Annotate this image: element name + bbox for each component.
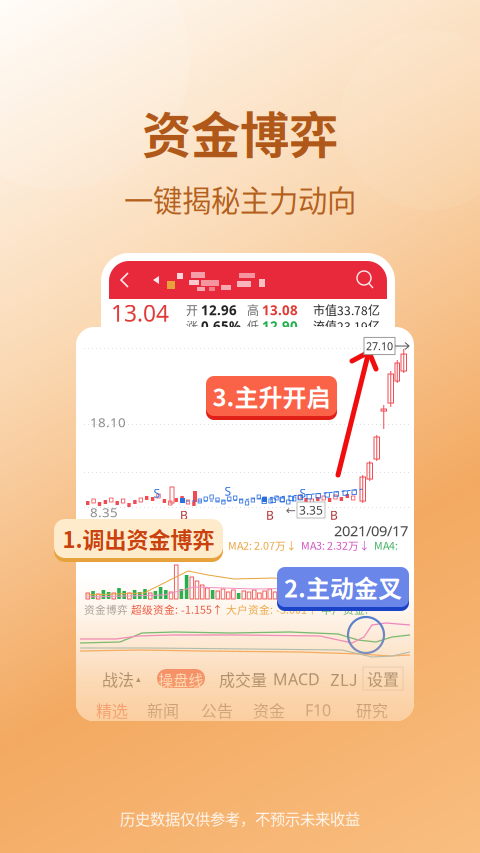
staticText: ZLJ xyxy=(330,667,358,691)
button[interactable]: ZLJ xyxy=(330,665,358,693)
staticText: MA4: xyxy=(374,537,398,553)
staticText: ← xyxy=(286,503,296,517)
button[interactable]: F10 xyxy=(296,697,340,723)
staticText: 设置 xyxy=(367,667,399,690)
staticText: 8.35 xyxy=(90,503,118,521)
staticText: 战法 xyxy=(102,667,134,691)
staticText: 27.10 xyxy=(366,339,393,353)
staticText: 2.主动金叉 xyxy=(284,570,402,604)
staticText: 涨 xyxy=(186,317,198,335)
button[interactable]: 1.调出资金博弈 xyxy=(54,519,223,558)
staticText: -5.001↑ xyxy=(276,601,318,617)
staticText: S xyxy=(299,485,306,501)
staticText: 12.96 xyxy=(201,301,237,319)
staticText: B xyxy=(180,507,188,523)
staticText: 一键揭秘主力动向 xyxy=(124,177,356,220)
staticText: S xyxy=(153,485,160,501)
button[interactable]: 设置 xyxy=(363,667,403,690)
staticText: B xyxy=(266,507,274,523)
staticText: 低 xyxy=(247,317,259,335)
staticText: 12.90 xyxy=(262,317,298,335)
staticText: 高 xyxy=(247,301,259,319)
staticText: 资金博弈 xyxy=(84,601,128,617)
button[interactable]: 研究 xyxy=(350,697,394,723)
staticText: 13.04 xyxy=(111,298,169,328)
staticText: MA3: 2.32万↓ xyxy=(301,537,370,553)
staticText: 资金 xyxy=(253,698,285,722)
staticText: 操盘线 xyxy=(158,669,203,690)
staticText: -1.155↑ xyxy=(181,601,223,617)
staticText: 13.08 xyxy=(262,301,298,319)
staticText: 开 xyxy=(186,301,198,319)
button[interactable]: MACD xyxy=(273,665,311,693)
button[interactable]: 2.主动金叉 xyxy=(277,567,409,607)
staticText: 7万↓ xyxy=(196,537,224,553)
staticText: B xyxy=(330,507,338,523)
staticText: 市值33.78亿 xyxy=(313,301,380,319)
staticText: ▴ xyxy=(136,674,141,684)
staticText: 1.调出资金博弈 xyxy=(62,523,214,554)
button[interactable]: 资金 xyxy=(247,697,291,723)
staticText: 18.10 xyxy=(90,413,126,431)
button[interactable]: 精选 xyxy=(90,697,134,723)
staticText: 成交量 xyxy=(219,667,267,691)
staticText: 公告 xyxy=(201,698,233,722)
staticText: MACD xyxy=(273,668,320,690)
staticText: 2021/09/17 xyxy=(334,521,408,540)
staticText: S xyxy=(224,483,231,499)
staticText: 新闻 xyxy=(147,698,179,722)
button[interactable]: 操盘线 xyxy=(157,669,205,688)
staticText: 资金博弈 xyxy=(142,96,338,167)
staticText: F10 xyxy=(305,699,331,721)
button[interactable]: 成交量 xyxy=(219,665,257,693)
staticText: 流值23.19亿 xyxy=(313,317,380,335)
staticText: 历史数据仅供参考，不预示未来收益 xyxy=(120,807,360,829)
button[interactable]: 3.主升开启 xyxy=(206,376,337,416)
button[interactable]: 新闻 xyxy=(141,697,185,723)
button[interactable]: 公告 xyxy=(195,697,239,723)
staticText: 中户资金: xyxy=(321,601,368,617)
staticText: 研究 xyxy=(356,698,388,722)
staticText: 精选 xyxy=(96,698,128,722)
staticText: 0.65% xyxy=(201,317,241,335)
staticText: 超级资金: xyxy=(131,601,178,617)
staticText: 3.35 xyxy=(299,502,323,518)
button[interactable]: 战法 xyxy=(102,665,140,693)
staticText: 3.主升开启 xyxy=(212,379,330,413)
staticText: 大户资金: xyxy=(226,601,273,617)
staticText: MA2: 2.07万↓ xyxy=(228,537,297,553)
